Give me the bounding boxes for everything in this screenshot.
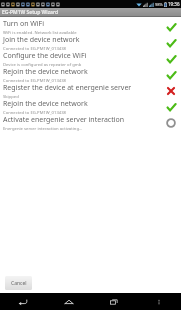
other: Completed: [167, 71, 176, 80]
button[interactable]: Configure the device WiFi: [0, 51, 181, 67]
button[interactable]: Join the device network: [0, 35, 181, 51]
other: Completed: [167, 39, 176, 48]
staticText: Connected to EG-PM1W_013438: [3, 46, 66, 51]
button[interactable]: Register the device at energenie server: [0, 83, 181, 99]
staticText: Configure the device WiFi: [3, 51, 87, 61]
button[interactable]: Turn on WiFi: [0, 19, 181, 35]
staticText: 19:36: [168, 1, 180, 7]
staticText: Rejoin the device network: [3, 99, 88, 109]
other: In progress: [166, 118, 176, 128]
staticText: WiFi is enabled. Network list available: [3, 30, 77, 35]
staticText: Energenie server interaction activating.…: [3, 126, 83, 131]
staticText: Join the device network: [3, 35, 80, 45]
button[interactable]: Recent apps: [91, 293, 136, 310]
staticText: 98%: [155, 2, 163, 7]
staticText: Device is configured as repeater of gmb: [3, 62, 82, 67]
other: Completed: [167, 55, 176, 64]
other: Completed: [167, 103, 176, 112]
staticText: Register the device at energenie server: [3, 83, 132, 93]
button[interactable]: Rejoin the device network: [0, 67, 181, 83]
button[interactable]: Back: [0, 293, 46, 310]
button[interactable]: Cancel: [5, 276, 32, 290]
staticText: Connected to EG-PM1W_013438: [3, 110, 66, 115]
staticText: Connected to EG-PM1W_013438: [3, 78, 66, 83]
button[interactable]: Rejoin the device network: [0, 99, 181, 115]
other: Completed: [167, 23, 176, 32]
staticText: Rejoin the device network: [3, 67, 88, 77]
button[interactable]: Home: [46, 293, 91, 310]
staticText: EG-PM1W Setup Wizard: [2, 9, 59, 16]
other: Skipped: [167, 87, 175, 95]
staticText: Turn on WiFi: [3, 19, 45, 29]
staticText: Skipped: [3, 94, 19, 99]
button[interactable]: Menu: [136, 293, 181, 310]
staticText: Cancel: [11, 280, 27, 287]
button[interactable]: Activate energenie server interaction: [0, 115, 181, 131]
staticText: Activate energenie server interaction: [3, 115, 125, 125]
